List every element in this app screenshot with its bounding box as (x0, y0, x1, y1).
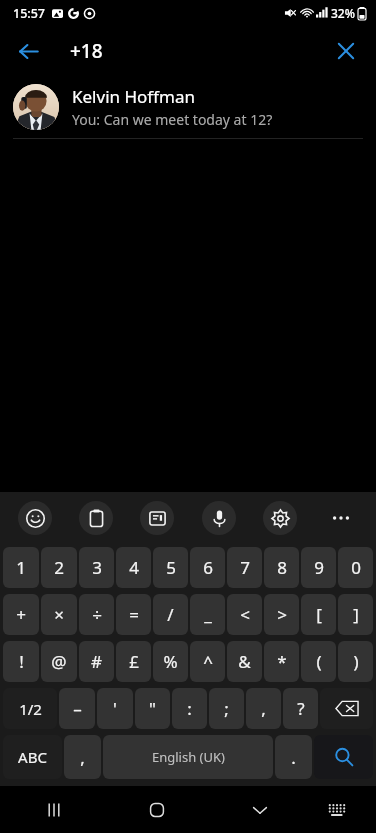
staticText: 2 (54, 556, 64, 579)
button[interactable]: " (135, 688, 170, 729)
staticText: 1/2 (19, 699, 42, 719)
button[interactable]: 4 (116, 547, 151, 588)
button[interactable]: × (41, 594, 77, 635)
staticText: 1 (16, 556, 26, 579)
button[interactable]: More options (324, 501, 358, 535)
staticText: * (277, 650, 287, 673)
staticText: You: Can we meet today at 12? (72, 110, 273, 129)
staticText: ? (297, 697, 305, 720)
staticText: 7 (240, 556, 250, 579)
button[interactable]: ; (209, 688, 244, 729)
button[interactable]: Hide keyboard (238, 788, 282, 832)
staticText: ^ (203, 650, 213, 673)
button[interactable]: ! (3, 641, 39, 682)
button[interactable]: [ (301, 594, 336, 635)
button[interactable]: + (3, 594, 39, 635)
button[interactable]: 6 (190, 547, 225, 588)
button[interactable]: Search (314, 735, 373, 779)
button[interactable]: # (79, 641, 114, 682)
staticText: English (UK) (152, 748, 225, 766)
button[interactable]: 8 (264, 547, 299, 588)
staticText: : (187, 697, 192, 720)
button[interactable]: Close (326, 31, 366, 71)
button[interactable]: 1/2 (3, 688, 57, 729)
staticText: 5 (166, 556, 176, 579)
staticText: # (91, 650, 102, 673)
staticText: , (80, 746, 85, 769)
button[interactable]: English (UK) (103, 735, 273, 779)
button[interactable]: 1 (3, 547, 39, 588)
button[interactable]: ' (97, 688, 133, 729)
button[interactable]: ( (301, 641, 336, 682)
staticText: 8 (277, 556, 287, 579)
staticText: & (238, 650, 251, 673)
button[interactable]: ] (338, 594, 373, 635)
button[interactable]: Stickers (140, 501, 174, 535)
button[interactable]: > (264, 594, 299, 635)
button[interactable]: 7 (227, 547, 262, 588)
button[interactable]: , (246, 688, 281, 729)
staticText: / (167, 603, 174, 626)
staticText: % (163, 650, 178, 673)
button[interactable]: Emoji (18, 501, 52, 535)
button[interactable]: / (153, 594, 188, 635)
button[interactable]: Home (135, 788, 179, 832)
staticText: ABC (18, 747, 47, 767)
button[interactable]: 5 (153, 547, 188, 588)
button[interactable]: ABC (3, 735, 62, 779)
button[interactable]: , (64, 735, 101, 779)
staticText: ' (113, 697, 117, 720)
staticText: _ (204, 603, 212, 626)
staticText: 3 (92, 556, 102, 579)
button[interactable]: Voice input (202, 501, 236, 535)
button[interactable]: 2 (41, 547, 77, 588)
staticText: £ (129, 650, 139, 673)
button[interactable]: 9 (301, 547, 336, 588)
button[interactable]: < (227, 594, 262, 635)
button[interactable]: Backspace (320, 688, 373, 729)
staticText: < (240, 603, 250, 626)
button[interactable]: @ (41, 641, 77, 682)
button[interactable]: 3 (79, 547, 114, 588)
staticText: , (261, 697, 266, 720)
button[interactable]: . (275, 735, 312, 779)
button[interactable]: % (153, 641, 188, 682)
staticText: 0 (351, 556, 361, 579)
button[interactable]: 0 (338, 547, 373, 588)
staticText: 15:57 (13, 5, 46, 22)
button[interactable]: Kelvin Hoffman (0, 76, 376, 138)
button[interactable]: = (116, 594, 151, 635)
button[interactable]: ) (338, 641, 373, 682)
button[interactable]: ÷ (79, 594, 114, 635)
button[interactable]: Clipboard (79, 501, 113, 535)
staticText: – (73, 697, 82, 720)
button[interactable]: Switch keyboard (315, 788, 359, 832)
staticText: Kelvin Hoffman (72, 85, 195, 108)
button[interactable]: _ (190, 594, 225, 635)
button[interactable]: ? (283, 688, 318, 729)
staticText: ) (353, 650, 359, 673)
button[interactable]: – (59, 688, 95, 729)
staticText: ! (19, 650, 24, 673)
button[interactable]: ^ (190, 641, 225, 682)
button[interactable]: £ (116, 641, 151, 682)
staticText: 6 (203, 556, 213, 579)
staticText: 9 (314, 556, 324, 579)
staticText: ( (316, 650, 322, 673)
staticText: ; (224, 697, 229, 720)
staticText: 32% (331, 5, 355, 21)
staticText: = (129, 603, 139, 626)
staticText: +18 (70, 38, 103, 64)
staticText: 4 (129, 556, 139, 579)
staticText: " (149, 697, 156, 720)
button[interactable]: Back (8, 31, 48, 71)
staticText: . (291, 746, 296, 769)
staticText: ] (353, 603, 359, 626)
button[interactable]: : (172, 688, 207, 729)
staticText: ÷ (92, 603, 102, 626)
button[interactable]: & (227, 641, 262, 682)
button[interactable]: Settings (263, 501, 297, 535)
button[interactable]: Recent apps (32, 788, 76, 832)
button[interactable]: * (264, 641, 299, 682)
staticText: @ (51, 650, 67, 673)
